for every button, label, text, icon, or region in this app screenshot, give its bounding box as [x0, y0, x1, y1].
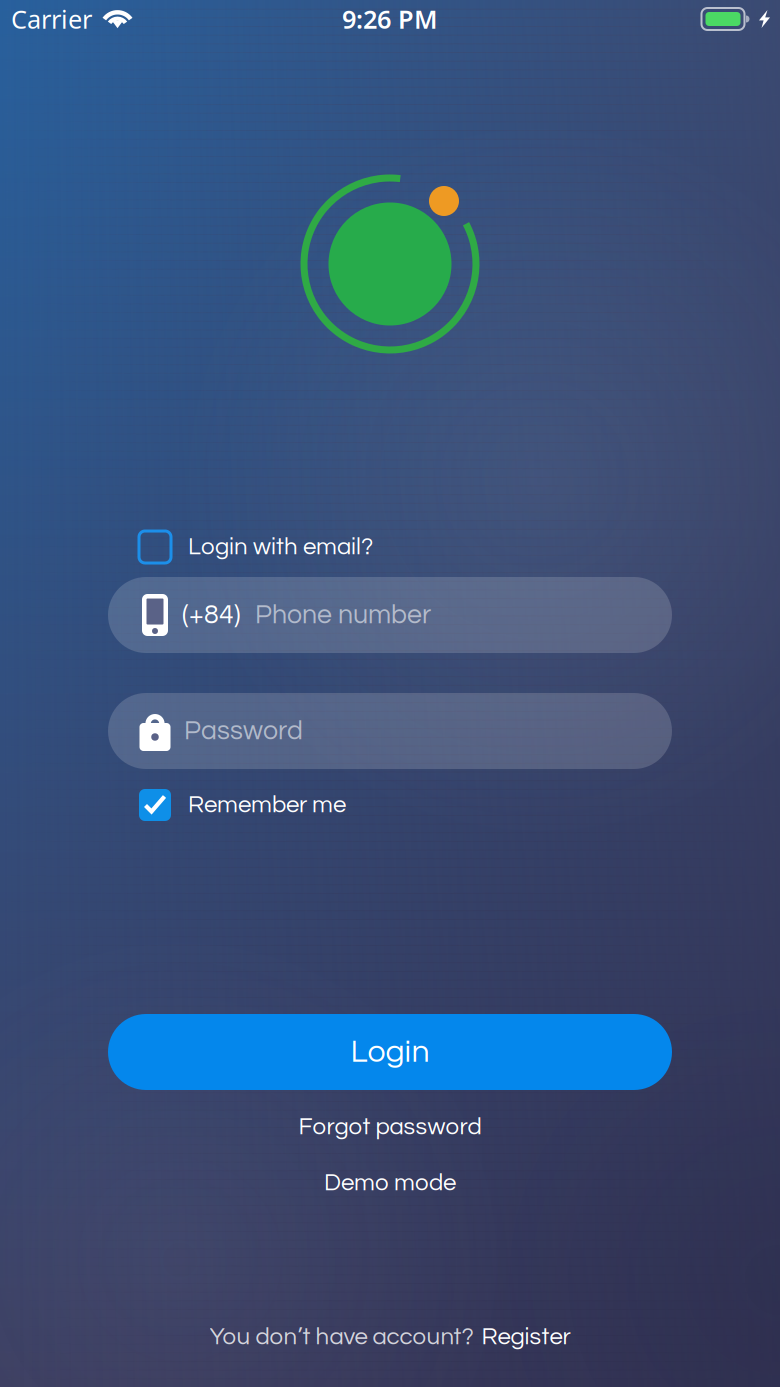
staticText: 9:26 PM	[342, 2, 438, 36]
staticText: Register	[481, 1325, 570, 1349]
staticText: (+84)	[182, 601, 241, 629]
button[interactable]: Login	[108, 1014, 672, 1090]
staticText: Forgot password	[298, 1115, 481, 1139]
staticText: Phone number	[255, 601, 431, 629]
staticText: Login	[350, 1035, 429, 1068]
staticText: Password	[184, 717, 303, 745]
staticText: Remember me	[188, 793, 346, 817]
staticText: Login with email?	[188, 535, 373, 559]
button[interactable]: You don’t have account?	[209, 1317, 570, 1357]
staticText: Demo mode	[324, 1171, 456, 1195]
button[interactable]: Login with email?	[0, 530, 780, 564]
button[interactable]: Forgot password	[272, 1108, 507, 1146]
button[interactable]: Demo mode	[298, 1164, 482, 1202]
staticText: Carrier	[11, 2, 92, 36]
staticText: You don’t have account?	[209, 1325, 473, 1349]
button[interactable]: Remember me	[0, 788, 780, 822]
